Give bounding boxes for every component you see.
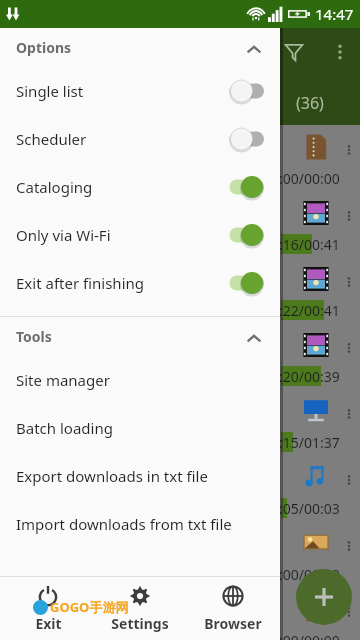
staticText: Exit after finishing <box>16 273 144 293</box>
staticText: GOGO手游网 <box>50 598 129 616</box>
button[interactable]: 00:16/00:41 <box>281 194 360 260</box>
staticText: Only via Wi-Fi <box>16 225 111 245</box>
button[interactable]: 00:05/00:03 <box>281 458 360 524</box>
staticText: Scheduler <box>16 129 87 149</box>
button[interactable]: Cataloging <box>0 163 280 211</box>
button[interactable]: 00:00/00:00 <box>281 524 360 590</box>
button[interactable]: Exit <box>3 576 93 640</box>
staticText: Options <box>16 38 72 57</box>
button[interactable]: Settings <box>95 576 185 640</box>
staticText: Settings <box>111 614 169 633</box>
button[interactable]: Options <box>0 28 280 67</box>
button[interactable]: Only via Wi-Fi <box>0 211 280 259</box>
staticText: 00:00/00:00 <box>263 631 340 640</box>
button[interactable]: Exit after finishing <box>0 259 280 307</box>
button[interactable]: 00:00/00:00 <box>281 590 360 640</box>
staticText: Cataloging <box>16 177 93 197</box>
staticText: 00:22/00:41 <box>263 301 340 320</box>
button[interactable]: 00:22/00:41 <box>281 260 360 326</box>
staticText: Site manager <box>16 370 110 390</box>
staticText: Batch loading <box>16 418 113 438</box>
button[interactable]: Tools <box>0 317 280 356</box>
button[interactable]: Scheduler <box>0 115 280 163</box>
staticText: Import downloads from txt file <box>16 514 232 534</box>
button[interactable]: Import downloads from txt file <box>0 500 280 548</box>
staticText: 00:15/01:37 <box>263 433 340 452</box>
staticText: 00:00/00:00 <box>263 565 340 584</box>
staticText: Browser <box>204 614 262 633</box>
staticText: Single list <box>16 81 84 101</box>
button[interactable]: Single list <box>0 67 280 115</box>
button[interactable]: 00:15/01:37 <box>281 392 360 458</box>
staticText: 00:20/00:39 <box>263 367 340 386</box>
staticText: 14:47 <box>315 4 354 24</box>
staticText: (36) <box>296 92 324 114</box>
staticText: 00:16/00:41 <box>263 235 340 254</box>
button[interactable]: Export downloads in txt file <box>0 452 280 500</box>
button[interactable]: Browser <box>188 576 278 640</box>
button[interactable]: Site manager <box>0 356 280 404</box>
staticText: Tools <box>16 327 52 346</box>
button[interactable]: 00:00/00:00 <box>281 128 360 194</box>
staticText: 00:00/00:00 <box>263 169 340 188</box>
button[interactable]: Add download <box>296 569 352 625</box>
button[interactable]: Filter <box>282 40 306 64</box>
staticText: Export downloads in txt file <box>16 466 208 486</box>
button[interactable]: 00:20/00:39 <box>281 326 360 392</box>
button[interactable]: Batch loading <box>0 404 280 452</box>
staticText: Exit <box>35 614 62 633</box>
button[interactable]: More options <box>328 40 352 64</box>
staticText: 00:05/00:03 <box>263 499 340 518</box>
